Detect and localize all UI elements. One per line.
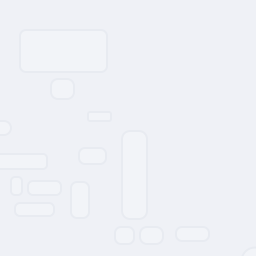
button[interactable]: Detail column — [71, 182, 89, 218]
button[interactable]: Filter — [79, 148, 106, 164]
button[interactable]: Home tab — [115, 227, 134, 244]
button[interactable]: Thumbnail — [51, 79, 74, 99]
button[interactable]: Library tab — [176, 227, 209, 241]
button[interactable]: Compose — [241, 247, 256, 256]
button[interactable]: Browse tab — [140, 227, 163, 244]
button[interactable]: Sidebar column — [122, 131, 147, 219]
